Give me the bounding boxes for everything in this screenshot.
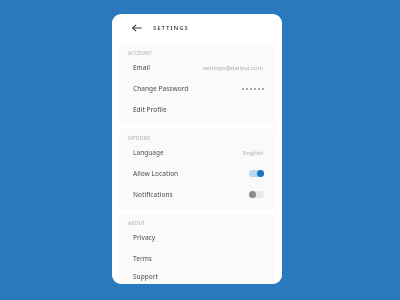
staticText: Allow Location: [133, 169, 179, 178]
staticText: ABOUT: [128, 220, 146, 226]
staticText: English: [243, 149, 264, 157]
button[interactable]: Language: [119, 142, 275, 163]
button[interactable]: Email: [119, 57, 275, 78]
staticText: Terms: [133, 254, 152, 263]
staticText: Notifications: [133, 190, 173, 199]
button[interactable]: Switch off: [249, 191, 264, 198]
button[interactable]: Notifications: [119, 184, 275, 205]
button[interactable]: Change Password: [119, 78, 275, 99]
staticText: Change Password: [133, 84, 189, 93]
button[interactable]: Edit Profile: [119, 99, 275, 120]
staticText: SETTINGS: [153, 24, 189, 32]
button[interactable]: Terms: [119, 248, 275, 269]
staticText: settings@dailyui.com: [203, 64, 264, 72]
button[interactable]: Switch on: [249, 170, 264, 177]
staticText: OPTIONS: [128, 135, 151, 141]
button[interactable]: Support: [119, 269, 275, 284]
staticText: Support: [133, 272, 158, 281]
button[interactable]: Privacy: [119, 227, 275, 248]
staticText: Privacy: [133, 233, 156, 242]
button[interactable]: Allow Location: [119, 163, 275, 184]
staticText: Email: [133, 63, 151, 72]
staticText: Edit Profile: [133, 105, 167, 114]
button[interactable]: Back: [130, 21, 144, 35]
staticText: ACCOUNT: [128, 50, 153, 56]
staticText: Language: [133, 148, 164, 157]
